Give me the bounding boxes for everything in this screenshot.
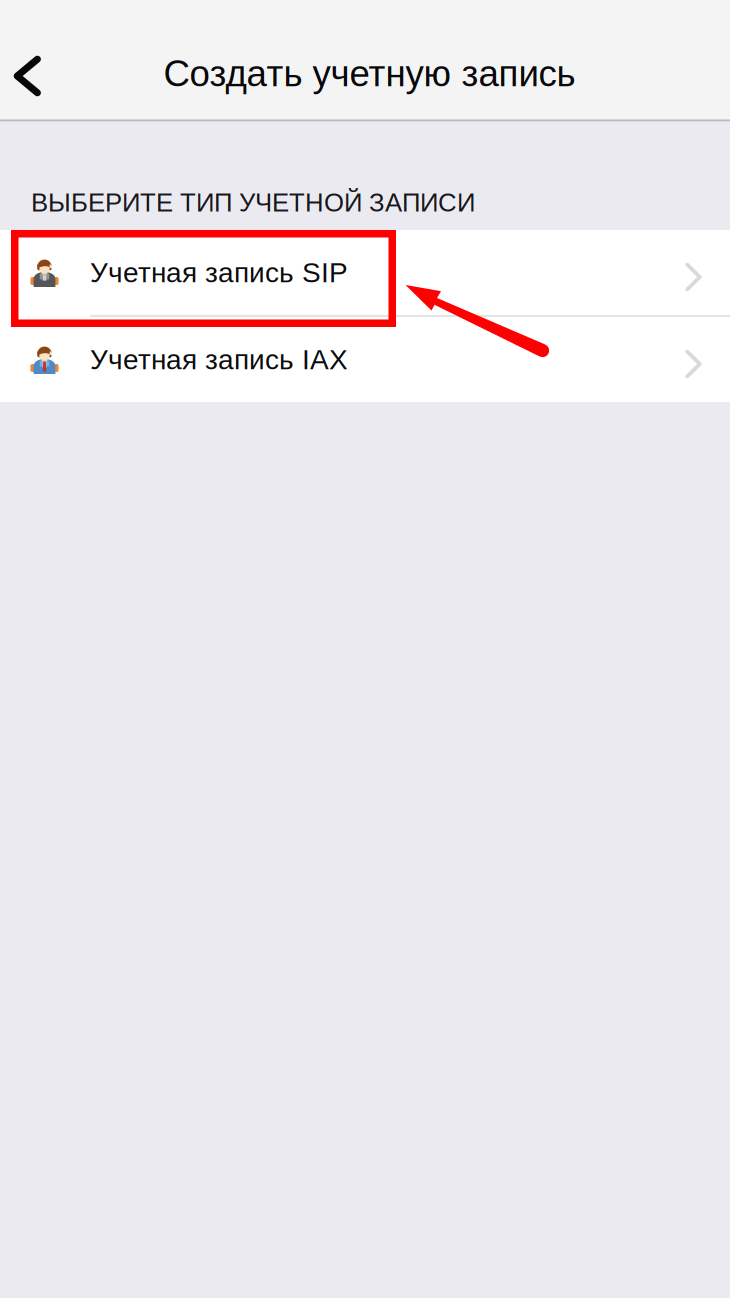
staticText: Создать учетную запись <box>163 53 575 94</box>
button[interactable]: Учетная запись SIP <box>0 230 730 315</box>
staticText: Учетная запись SIP <box>90 257 348 288</box>
button[interactable]: Back <box>0 0 76 119</box>
button[interactable]: Учетная запись IAX <box>0 317 730 402</box>
staticText: ВЫБЕРИТЕ ТИП УЧЕТНОЙ ЗАПИСИ <box>31 188 475 217</box>
staticText: Учетная запись IAX <box>90 344 348 375</box>
